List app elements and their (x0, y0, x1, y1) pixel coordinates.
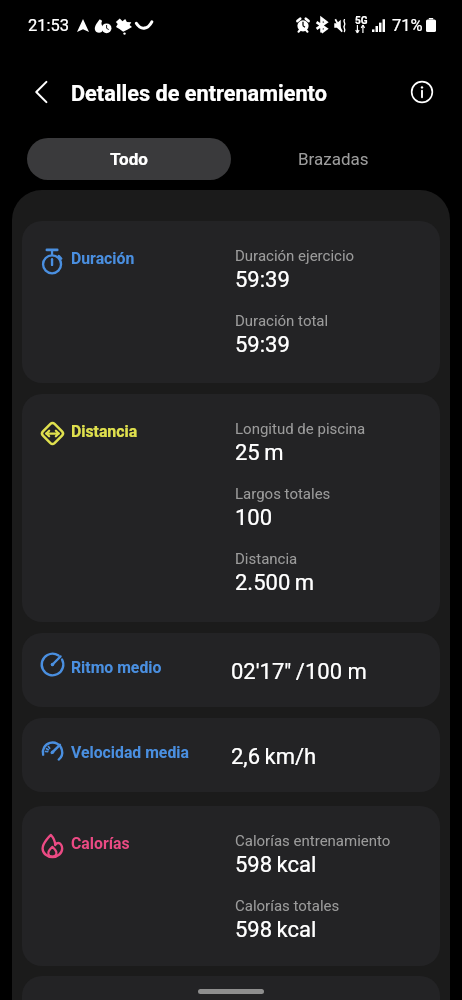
button[interactable]: Duración (22, 221, 440, 383)
button[interactable]: Velocidad media (22, 718, 440, 792)
staticText: Duración ejercicio (235, 247, 355, 265)
staticText: Duración total (235, 312, 329, 330)
button[interactable]: Brazadas (231, 138, 435, 180)
staticText: Ritmo medio (71, 658, 162, 677)
staticText: Todo (110, 149, 148, 169)
staticText: Calorías (71, 834, 130, 853)
button[interactable]: Ritmo medio (22, 633, 440, 707)
staticText: 59:39 (235, 267, 290, 293)
staticText: Calorías totales (235, 897, 340, 915)
staticText: Detalles de entrenamiento (71, 81, 327, 106)
staticText: 598 kcal (235, 917, 317, 943)
staticText: 71% (392, 16, 423, 35)
staticText: Distancia (235, 550, 298, 568)
button[interactable]: Atrás (20, 70, 64, 114)
staticText: Calorías entrenamiento (235, 832, 391, 850)
staticText: 598 kcal (235, 852, 317, 878)
staticText: 5G (355, 15, 368, 27)
staticText: 25 m (235, 440, 284, 466)
staticText: 100 (235, 505, 273, 531)
staticText: 2,6 km/h (231, 744, 317, 770)
staticText: 21:53 (28, 16, 70, 35)
button[interactable]: Información (400, 70, 444, 114)
staticText: Distancia (71, 422, 138, 441)
staticText: 02'17" /100 m (231, 659, 367, 685)
button[interactable]: Distancia (22, 394, 440, 622)
button[interactable]: Calorías (22, 806, 440, 966)
staticText: Longitud de piscina (235, 420, 366, 438)
staticText: Brazadas (298, 149, 369, 169)
staticText: Velocidad media (71, 743, 189, 762)
staticText: 59:39 (235, 332, 290, 358)
staticText: Largos totales (235, 485, 331, 503)
staticText: Duración (71, 249, 135, 268)
staticText: 2.500 m (235, 570, 315, 596)
button[interactable]: Todo (27, 138, 231, 180)
